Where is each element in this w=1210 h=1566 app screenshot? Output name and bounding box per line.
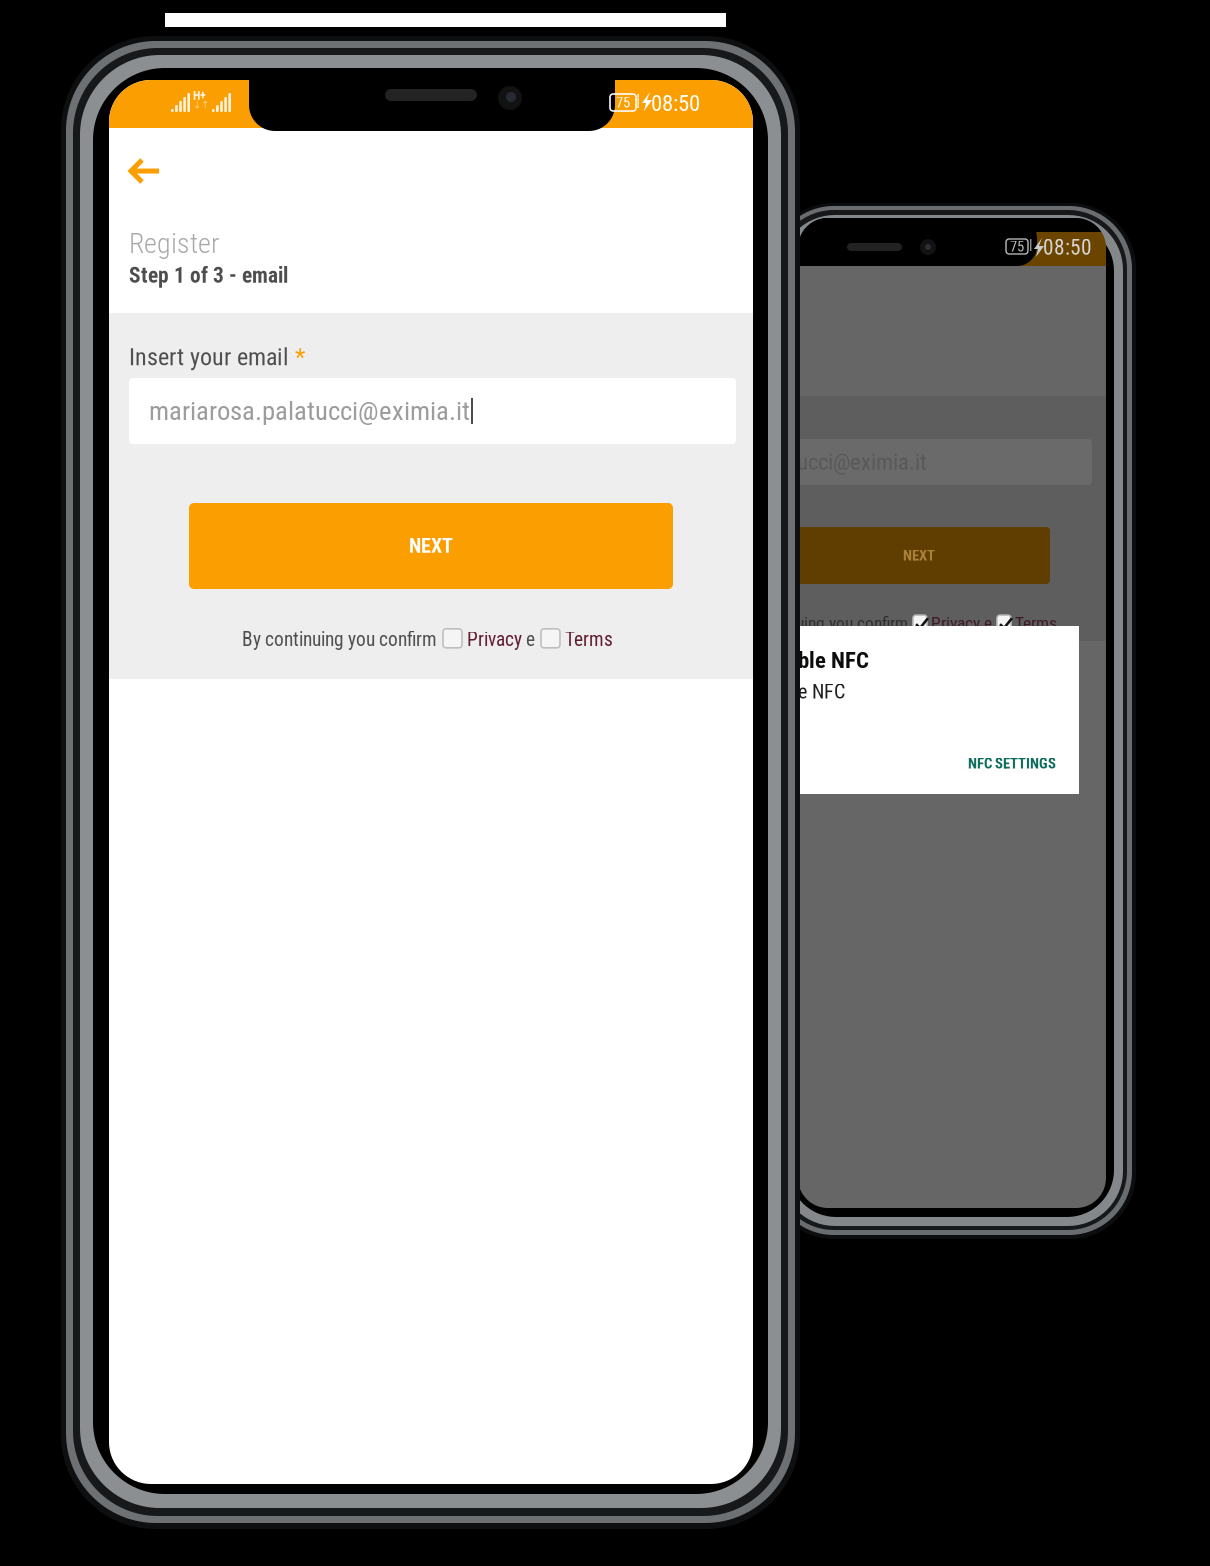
staticText: Terms — [565, 628, 613, 651]
staticText: Step 1 of 3 - email — [129, 263, 288, 288]
staticText: By continuing you confirm — [242, 628, 437, 651]
staticText: ble NFC — [798, 647, 869, 674]
staticText: Register — [129, 227, 219, 260]
button[interactable]: NFC SETTINGS — [968, 755, 1056, 772]
staticText: uing you confirm — [796, 613, 908, 633]
staticText: Privacy — [467, 628, 522, 651]
button[interactable]: Accept Privacy — [443, 629, 462, 648]
staticText: mariarosa.palatucci@eximia.it — [149, 395, 470, 427]
staticText: NEXT — [409, 534, 453, 558]
staticText: 08:50 — [651, 90, 700, 117]
staticText: Insert your email — [129, 343, 289, 371]
staticText: NFC SETTINGS — [968, 755, 1056, 772]
staticText: | — [1029, 236, 1033, 253]
staticText: H+ — [193, 88, 206, 103]
staticText: Terms — [1015, 613, 1057, 633]
staticText: e NFC — [798, 680, 845, 703]
staticText: 75 — [1010, 238, 1024, 255]
staticText: e — [522, 628, 535, 651]
button[interactable]: Privacy — [467, 628, 522, 651]
staticText: ucci@eximia.it — [797, 449, 927, 475]
staticText: 75 — [616, 94, 630, 111]
button[interactable]: Insert your email — [129, 378, 736, 444]
button[interactable]: Back — [128, 157, 162, 185]
staticText: * — [295, 343, 305, 371]
button[interactable]: Accept Terms — [541, 629, 560, 648]
button[interactable]: Terms — [565, 628, 613, 651]
staticText: ↓↑ — [193, 99, 209, 111]
staticText: Privacy e — [931, 613, 992, 633]
staticText: | — [636, 90, 640, 110]
staticText: NEXT — [903, 547, 935, 564]
staticText: 08:50 — [1043, 235, 1092, 260]
button[interactable]: NEXT — [189, 503, 673, 589]
